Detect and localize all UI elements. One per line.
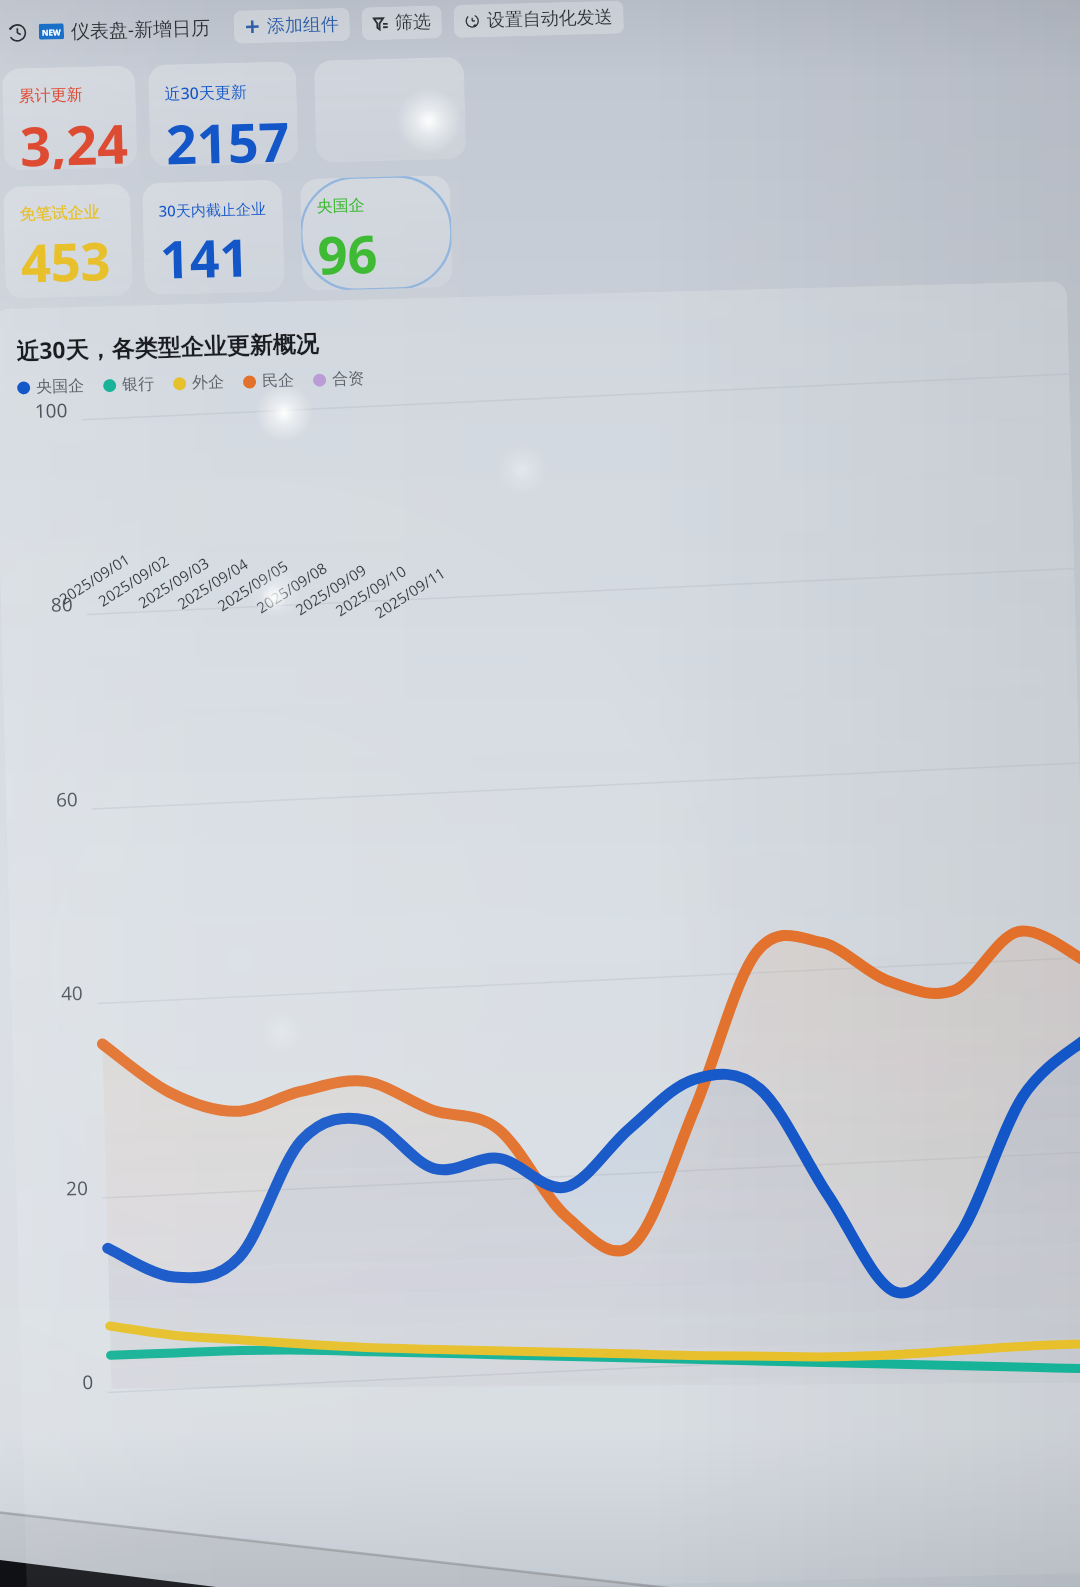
staticText: 添加组件 [266, 13, 339, 38]
staticText: 筛选 [394, 11, 431, 34]
button[interactable]: 设置自动化发送 [453, 0, 624, 38]
staticText: 2025/09/01 [54, 548, 134, 609]
staticText: 免笔试企业 [19, 202, 100, 224]
staticText: 3,240 [19, 105, 137, 170]
staticText: 30天内截止企业 [158, 198, 267, 221]
button[interactable]: 免笔试企业 [3, 183, 133, 299]
staticText: 60 [56, 786, 78, 813]
staticText: 近30天更新 [164, 80, 248, 105]
button[interactable]: 外企 [173, 372, 224, 393]
staticText: 银行 [122, 374, 154, 395]
staticText: NEW [42, 26, 61, 38]
staticText: 2157 [165, 103, 290, 166]
button[interactable]: 30天内截止企业 [142, 179, 285, 295]
button[interactable]: 央国企 [17, 376, 84, 397]
button[interactable]: 筛选 [361, 5, 442, 40]
staticText: 141 [159, 220, 251, 294]
staticText: 80 [51, 591, 73, 618]
button[interactable]: 仪表盘-新增日历 [70, 14, 211, 44]
staticText: 2025/09/10 [330, 560, 411, 621]
staticText: 央国企 [36, 376, 84, 397]
staticText: 2025/09/05 [212, 555, 293, 616]
staticText: 100 [34, 397, 68, 424]
staticText: 民企 [262, 370, 294, 391]
button[interactable]: 历史记录 [4, 19, 30, 46]
button[interactable]: 民企 [243, 370, 294, 392]
staticText: 合资 [332, 368, 364, 389]
staticText: 2025/09/03 [133, 552, 214, 613]
staticText: 453 [20, 224, 112, 297]
button[interactable] [314, 57, 466, 163]
staticText: 96 [317, 217, 379, 290]
staticText: 2025/09/04 [172, 553, 253, 614]
staticText: 累计更新 [18, 85, 83, 106]
button[interactable]: 央国企 [300, 175, 453, 291]
staticText: 2025/09/02 [93, 550, 173, 611]
button[interactable]: 添加组件 [233, 8, 350, 44]
button[interactable]: 合资 [313, 368, 364, 390]
staticText: 央国企 [316, 195, 365, 217]
button[interactable]: 近30天，各类型企业更新概况 [16, 327, 319, 365]
staticText: 20 [66, 1175, 88, 1202]
staticText: 设置自动化发送 [486, 6, 613, 32]
button[interactable]: 近30天更新 [148, 61, 298, 167]
staticText: 2025/09/08 [251, 557, 332, 618]
staticText: 0 [82, 1369, 94, 1395]
staticText: 2025/09/09 [290, 559, 371, 620]
button[interactable]: 银行 [103, 374, 154, 395]
staticText: 2025/09/11 [369, 562, 450, 622]
staticText: 40 [61, 980, 83, 1007]
staticText: 外企 [192, 372, 224, 393]
button[interactable]: 累计更新 [2, 65, 137, 171]
